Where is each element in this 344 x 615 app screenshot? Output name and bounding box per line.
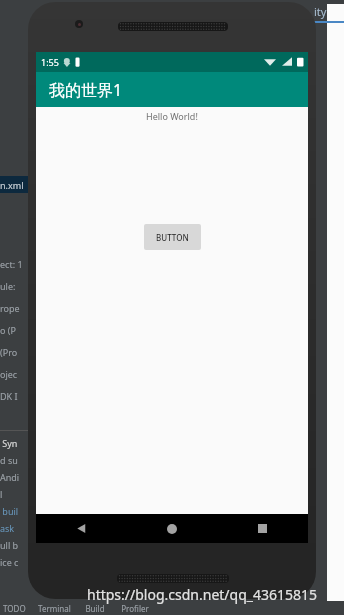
staticText: rope — [0, 302, 20, 314]
staticText: TODO Terminal Build Profiler — [3, 603, 149, 614]
staticText: buil — [0, 505, 19, 517]
staticText: ojec — [0, 368, 18, 380]
staticText: Hello World! — [146, 110, 198, 122]
staticText: Syn — [0, 437, 18, 449]
staticText: d su — [0, 454, 18, 466]
staticText: Andi — [0, 471, 20, 483]
staticText: o (P — [0, 324, 16, 336]
staticText: DK I — [0, 390, 18, 402]
button[interactable]: Recent apps — [217, 514, 308, 543]
button[interactable]: Home — [126, 514, 217, 543]
staticText: l — [0, 488, 3, 500]
staticText: ect: 1 — [0, 258, 23, 270]
button[interactable]: BUTTON — [144, 224, 201, 250]
button[interactable]: Back — [36, 514, 126, 543]
staticText: ice c — [0, 556, 19, 568]
staticText: n.xml — [0, 179, 24, 191]
staticText: ule: — [0, 280, 16, 292]
staticText: https://blog.csdn.net/qq_43615815 — [87, 585, 318, 604]
staticText: 我的世界1 — [49, 79, 123, 101]
staticText: ull b — [0, 539, 19, 551]
staticText: 1:55 — [41, 56, 59, 68]
staticText: ity — [314, 4, 327, 19]
staticText: BUTTON — [156, 232, 189, 243]
staticText: ask — [0, 522, 15, 534]
staticText: (Pro — [0, 346, 18, 358]
